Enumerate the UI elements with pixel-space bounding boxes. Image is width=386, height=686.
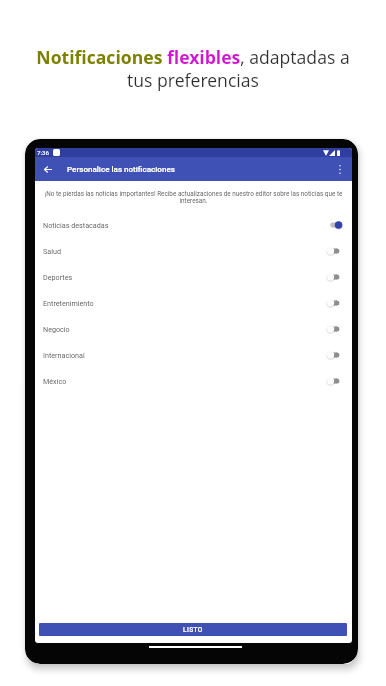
button[interactable]: Noticias destacadas <box>35 212 352 238</box>
staticText: México <box>43 377 67 385</box>
button[interactable]: Salud <box>35 238 352 264</box>
staticText: LISTO <box>183 626 203 634</box>
staticText: Salud <box>43 247 61 255</box>
staticText: Internacional <box>43 351 85 359</box>
button[interactable]: Internacional <box>35 342 352 368</box>
staticText: Negocio <box>43 325 70 333</box>
button[interactable]: Deportes <box>35 264 352 290</box>
staticText: 7:36 <box>37 149 49 156</box>
staticText: Entretenimiento <box>43 299 94 307</box>
button[interactable]: Entretenimiento <box>35 290 352 316</box>
button[interactable]: Back <box>40 162 55 177</box>
button[interactable]: Negocio <box>35 316 352 342</box>
staticText: Personalice las notificaciones <box>67 165 175 174</box>
button[interactable]: More options <box>332 162 347 177</box>
staticText: ¡No te pierdas las noticias importantes!… <box>39 190 348 204</box>
staticText: Deportes <box>43 273 73 281</box>
staticText: Noticias destacadas <box>43 221 109 229</box>
staticText: Notificaciones flexibles, adaptadas a tu… <box>35 45 351 92</box>
button[interactable]: LISTO <box>39 623 347 636</box>
button[interactable]: México <box>35 368 352 394</box>
